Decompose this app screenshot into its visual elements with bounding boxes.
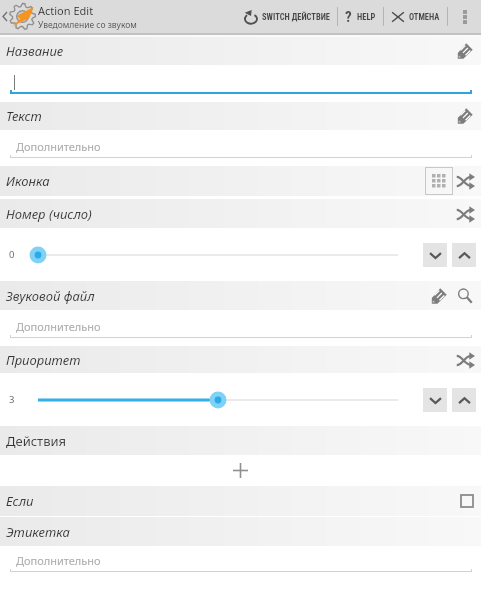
button[interactable]: Текст [0, 102, 481, 130]
staticText: Номер (число) [6, 205, 92, 223]
staticText: Название [6, 42, 64, 60]
button[interactable]: Increase [452, 243, 476, 267]
button[interactable]: More options [448, 0, 481, 33]
button[interactable]: Номер (число) [0, 199, 481, 228]
button[interactable]: Choose icon [425, 167, 453, 195]
button[interactable]: Edit sound file [427, 284, 451, 308]
button[interactable]: Дополнительно [0, 130, 481, 166]
staticText: Звуковой файл [6, 287, 95, 305]
staticText: ОТМЕНА [409, 12, 440, 22]
staticText: Дополнительно [16, 553, 101, 568]
button[interactable]: Slider [38, 243, 398, 267]
staticText: Текст [6, 107, 42, 125]
button[interactable]: Cancel [384, 0, 447, 33]
staticText: Action Edit [38, 3, 94, 18]
staticText: Уведомление со звуком [38, 19, 137, 31]
button[interactable]: Action Edit [0, 0, 137, 33]
button[interactable]: Дополнительно [0, 546, 481, 580]
staticText: Действия [6, 432, 67, 450]
button[interactable] [0, 65, 481, 102]
staticText: HELP [357, 12, 376, 22]
button[interactable]: Дополнительно [0, 310, 481, 346]
button[interactable]: Действия [0, 426, 481, 455]
button[interactable]: Приоритет [0, 346, 481, 373]
button[interactable]: Variable [453, 169, 477, 193]
button[interactable]: Variable [453, 202, 477, 226]
staticText: Если [6, 492, 34, 510]
staticText: SWITCH ДЕЙСТВИЕ [262, 12, 330, 22]
button[interactable]: Иконка [0, 166, 481, 196]
button[interactable]: Slider [38, 388, 398, 412]
button[interactable]: ? [338, 0, 383, 33]
button[interactable]: Decrease [423, 388, 447, 412]
button[interactable]: Variable [453, 348, 477, 372]
staticText: Приоритет [6, 351, 81, 369]
button[interactable]: Этикетка [0, 517, 481, 546]
button[interactable]: Add action [0, 455, 481, 486]
staticText: 0 [9, 248, 15, 261]
button[interactable]: Звуковой файл [0, 281, 481, 310]
button[interactable]: Increase [452, 388, 476, 412]
staticText: ? [345, 8, 352, 26]
staticText: Этикетка [6, 523, 70, 541]
button[interactable]: Decrease [423, 243, 447, 267]
button[interactable]: Edit name [453, 39, 477, 63]
button[interactable]: Если [0, 486, 481, 516]
staticText: Иконка [6, 172, 50, 190]
button[interactable]: Edit text [453, 104, 477, 128]
button[interactable]: Switch action [237, 0, 337, 33]
button[interactable]: Search [453, 284, 477, 308]
staticText: 3 [9, 393, 15, 406]
button[interactable]: Название [0, 37, 481, 65]
staticText: Дополнительно [16, 319, 101, 334]
staticText: Дополнительно [16, 139, 101, 154]
button[interactable]: If condition [457, 491, 477, 511]
